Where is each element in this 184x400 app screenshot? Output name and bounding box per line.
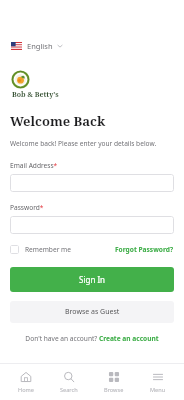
staticText: Browse — [104, 386, 124, 394]
staticText: Password* — [10, 203, 44, 212]
staticText: English — [27, 41, 53, 51]
button[interactable]: Don't have an account? Create an account — [10, 332, 174, 345]
staticText: Bob & Betty's — [12, 90, 59, 100]
staticText: Email Address* — [10, 161, 58, 170]
staticText: Remember me — [25, 245, 71, 254]
button[interactable]: English — [9, 38, 65, 54]
button[interactable] — [10, 174, 174, 192]
staticText: Browse as Guest — [65, 307, 120, 317]
staticText: Menu — [150, 386, 166, 394]
staticText: Forgot Password? — [115, 245, 174, 254]
staticText: Search — [60, 386, 78, 394]
staticText: Welcome Back — [10, 112, 106, 130]
button[interactable]: Forgot Password? — [115, 243, 174, 256]
button[interactable] — [10, 216, 174, 234]
staticText: Don't have an account? Create an account — [25, 334, 159, 343]
button[interactable]: Browse — [96, 368, 132, 397]
staticText: Welcome back! Please enter your details … — [10, 139, 157, 148]
button[interactable]: Remember me — [10, 243, 71, 256]
button[interactable]: Browse as Guest — [10, 301, 174, 323]
staticText: Sign In — [79, 274, 106, 285]
button[interactable]: Menu — [142, 368, 174, 397]
button[interactable]: Sign In — [10, 267, 174, 292]
button[interactable]: Search — [52, 368, 86, 397]
button[interactable]: Home — [10, 368, 42, 397]
staticText: Home — [18, 386, 34, 394]
